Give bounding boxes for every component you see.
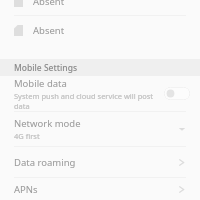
button[interactable]: Absent (0, 0, 200, 15)
other: Choose network mode (178, 125, 186, 133)
staticText: Mobile data (14, 77, 67, 90)
button[interactable]: Network mode (0, 112, 200, 146)
button[interactable]: Absent (0, 16, 200, 44)
button[interactable]: APNs (0, 178, 200, 200)
button[interactable]: Mobile data (0, 76, 200, 111)
button[interactable]: Data roaming (0, 147, 200, 177)
staticText: Data roaming (14, 156, 177, 169)
staticText: Absent (33, 0, 65, 8)
staticText: Mobile Settings (14, 62, 78, 74)
button[interactable]: Mobile data switch (164, 87, 190, 100)
staticText: 4G first (14, 131, 40, 141)
staticText: System push and cloud service will post … (14, 91, 159, 111)
staticText: APNs (14, 183, 177, 196)
staticText: Absent (33, 24, 65, 37)
staticText: Network mode (14, 117, 81, 130)
